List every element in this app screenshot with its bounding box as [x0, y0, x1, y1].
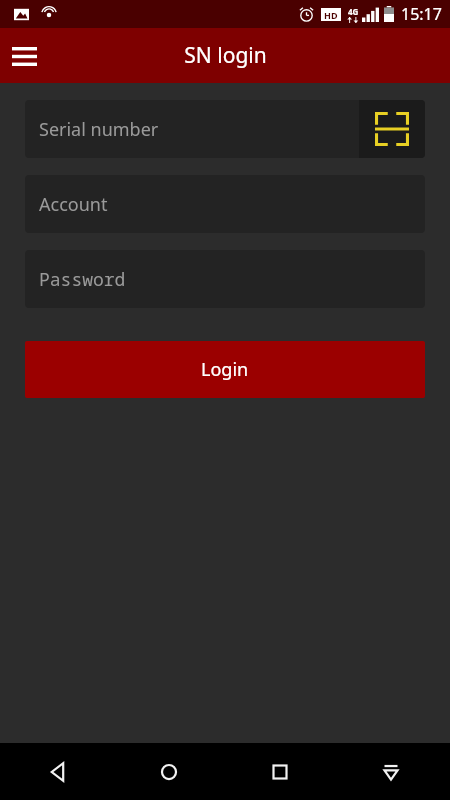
button[interactable]: Login: [25, 341, 425, 398]
staticText: HD: [324, 9, 338, 21]
staticText: Login: [201, 357, 249, 382]
button[interactable]: Recent apps: [256, 748, 304, 796]
button[interactable]: Home: [145, 748, 193, 796]
button[interactable]: Password: [25, 250, 425, 308]
button[interactable]: Open navigation drawer: [0, 32, 48, 80]
staticText: 15:17: [401, 3, 442, 25]
button[interactable]: Account: [25, 175, 425, 233]
staticText: Serial number: [39, 117, 159, 142]
staticText: SN login: [184, 41, 267, 70]
button[interactable]: Back: [34, 748, 82, 796]
staticText: Account: [39, 192, 108, 217]
button[interactable]: Serial number: [25, 100, 425, 158]
staticText: 4G: [348, 6, 359, 17]
button[interactable]: Hide keyboard: [367, 748, 415, 796]
staticText: Password: [39, 267, 126, 292]
button[interactable]: Scan serial number: [359, 100, 425, 158]
